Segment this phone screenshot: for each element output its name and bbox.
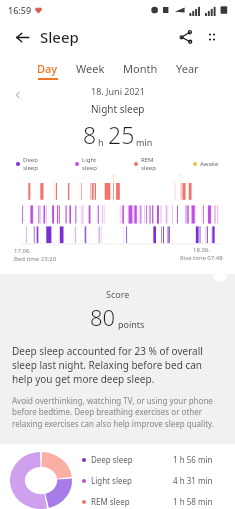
button[interactable]: Day: [35, 60, 60, 81]
staticText: 25: [108, 119, 135, 150]
staticText: 16:59: [8, 4, 32, 16]
staticText: Bed time 23:20: [14, 255, 57, 263]
staticText: Day: [37, 61, 58, 76]
staticText: Avoid overthinking, watching TV, or usin…: [12, 395, 223, 430]
staticText: Sleep: [40, 27, 79, 47]
staticText: sleep: [23, 164, 38, 172]
button[interactable]: Scroll handle: [213, 268, 227, 282]
button[interactable]: REM sleep: [82, 496, 225, 507]
staticText: sleep: [141, 164, 156, 172]
button[interactable]: Deep sleep: [82, 454, 225, 465]
staticText: Year: [176, 61, 199, 76]
button[interactable]: Month: [121, 60, 160, 81]
staticText: Light sleep: [91, 475, 153, 486]
staticText: REM: [141, 156, 154, 164]
staticText: Rise time 07:48: [180, 254, 223, 262]
staticText: min: [136, 136, 153, 148]
staticText: 17.06.: [14, 247, 31, 255]
button[interactable]: Week: [74, 60, 107, 81]
staticText: 1 h 56 min: [173, 454, 225, 465]
staticText: points: [118, 318, 145, 330]
staticText: Score: [106, 288, 130, 300]
button[interactable]: Year: [174, 60, 201, 81]
staticText: Night sleep: [91, 102, 145, 116]
staticText: 1 h 58 min: [173, 496, 225, 507]
staticText: Light: [82, 156, 97, 164]
staticText: Deep: [23, 156, 38, 164]
button[interactable]: Back: [10, 25, 34, 49]
button[interactable]: More options: [199, 24, 225, 50]
staticText: 18.06.: [193, 246, 210, 254]
button[interactable]: Share: [173, 24, 199, 50]
staticText: 4 h 31 min: [173, 475, 225, 486]
staticText: Deep sleep: [91, 454, 153, 465]
staticText: Awake: [200, 160, 219, 168]
button[interactable]: Previous day: [10, 87, 26, 103]
staticText: Week: [76, 61, 105, 76]
staticText: 8: [83, 119, 97, 150]
staticText: sleep: [82, 164, 97, 172]
staticText: h: [98, 136, 104, 148]
staticText: 80: [90, 302, 116, 332]
staticText: Deep sleep accounted for 23 % of overall…: [12, 344, 223, 386]
button[interactable]: Light sleep: [82, 475, 225, 486]
staticText: 18. Juni 2021: [91, 85, 145, 97]
staticText: REM sleep: [91, 496, 153, 507]
staticText: Month: [123, 61, 158, 76]
